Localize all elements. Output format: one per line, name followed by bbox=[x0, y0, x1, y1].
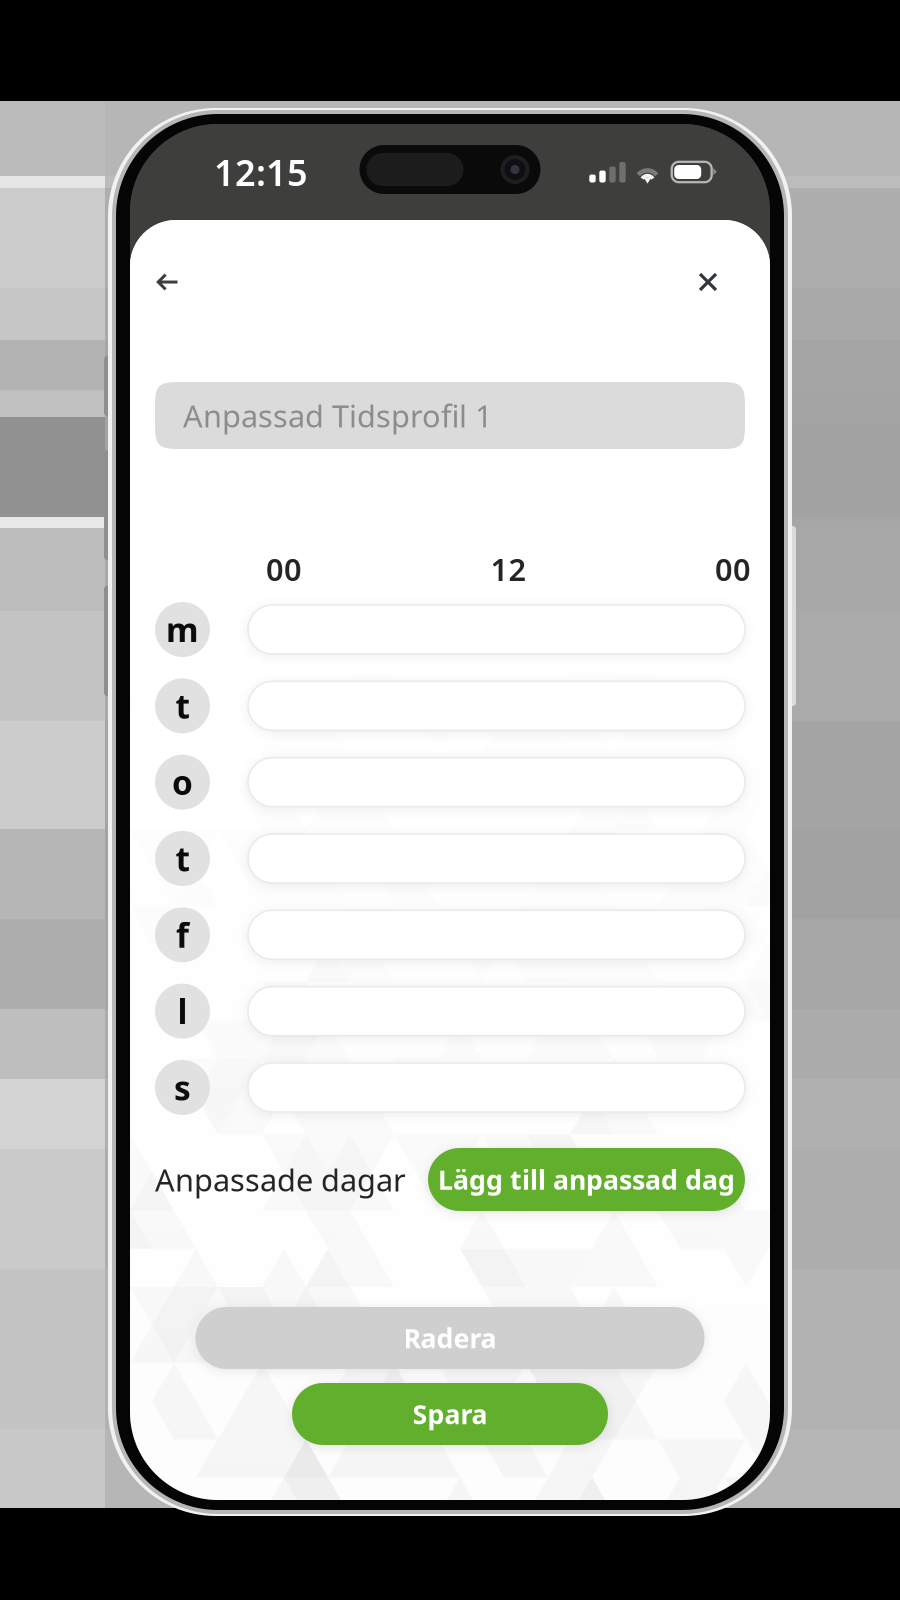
staticText: 00 bbox=[266, 549, 302, 589]
staticText: f bbox=[176, 913, 189, 957]
staticText: Radera bbox=[403, 1320, 496, 1356]
button[interactable]: Lägg till anpassad dag bbox=[428, 1148, 745, 1211]
button[interactable]: Radera bbox=[195, 1307, 704, 1369]
staticText: o bbox=[172, 760, 193, 804]
button[interactable]: Spara bbox=[292, 1383, 608, 1445]
button[interactable]: Anpassad Tidsprofil 1 bbox=[155, 382, 745, 449]
button[interactable]: Schema o bbox=[248, 758, 745, 807]
staticText: Lägg till anpassad dag bbox=[438, 1162, 735, 1197]
button[interactable]: Schema l bbox=[248, 987, 745, 1036]
staticText: Anpassade dagar bbox=[155, 1159, 406, 1200]
button[interactable]: Tillbaka bbox=[139, 253, 197, 311]
button[interactable]: Dag t bbox=[155, 831, 210, 886]
button[interactable]: Dag t bbox=[155, 678, 210, 733]
staticText: 00 bbox=[715, 549, 751, 589]
staticText: t bbox=[175, 684, 189, 728]
button[interactable]: Schema f bbox=[248, 910, 745, 959]
staticText: m bbox=[166, 607, 199, 652]
staticText: 12:15 bbox=[214, 148, 308, 196]
staticText: t bbox=[175, 836, 189, 881]
button[interactable]: Schema s bbox=[248, 1063, 745, 1112]
button[interactable]: Dag m bbox=[155, 602, 210, 657]
staticText: 12 bbox=[490, 549, 526, 589]
button[interactable]: Dag s bbox=[155, 1060, 210, 1115]
button[interactable]: Dag f bbox=[155, 907, 210, 962]
button[interactable]: Dag l bbox=[155, 984, 210, 1039]
staticText: s bbox=[174, 1065, 191, 1110]
button[interactable]: Schema t bbox=[248, 834, 745, 883]
staticText: l bbox=[177, 989, 187, 1033]
staticText: Anpassad Tidsprofil 1 bbox=[183, 395, 493, 436]
button[interactable]: Schema m bbox=[248, 605, 745, 654]
staticText: Spara bbox=[412, 1396, 487, 1432]
button[interactable]: Dag o bbox=[155, 755, 210, 810]
button[interactable]: Schema t bbox=[248, 681, 745, 730]
button[interactable]: Stäng bbox=[679, 253, 737, 311]
